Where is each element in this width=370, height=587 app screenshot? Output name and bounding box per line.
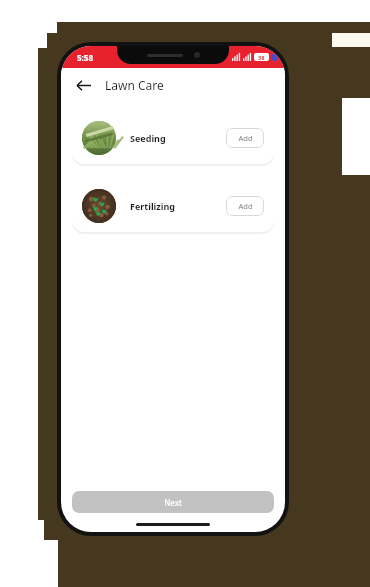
staticText: Seeding	[130, 132, 166, 144]
button[interactable]: Back	[69, 71, 97, 99]
staticText: Add	[238, 133, 253, 143]
button[interactable]: Add	[226, 196, 264, 216]
button[interactable]: Next	[72, 491, 274, 513]
staticText: Lawn Care	[105, 77, 164, 93]
staticText: Fertilizing	[130, 200, 175, 212]
staticText: 38	[258, 54, 265, 61]
button[interactable]: Seeding	[72, 112, 274, 164]
button[interactable]: Add	[226, 128, 264, 148]
staticText: 5:58	[77, 52, 93, 63]
button[interactable]: Fertilizing	[72, 180, 274, 232]
staticText: Add	[238, 201, 253, 211]
staticText: Next	[164, 497, 182, 508]
